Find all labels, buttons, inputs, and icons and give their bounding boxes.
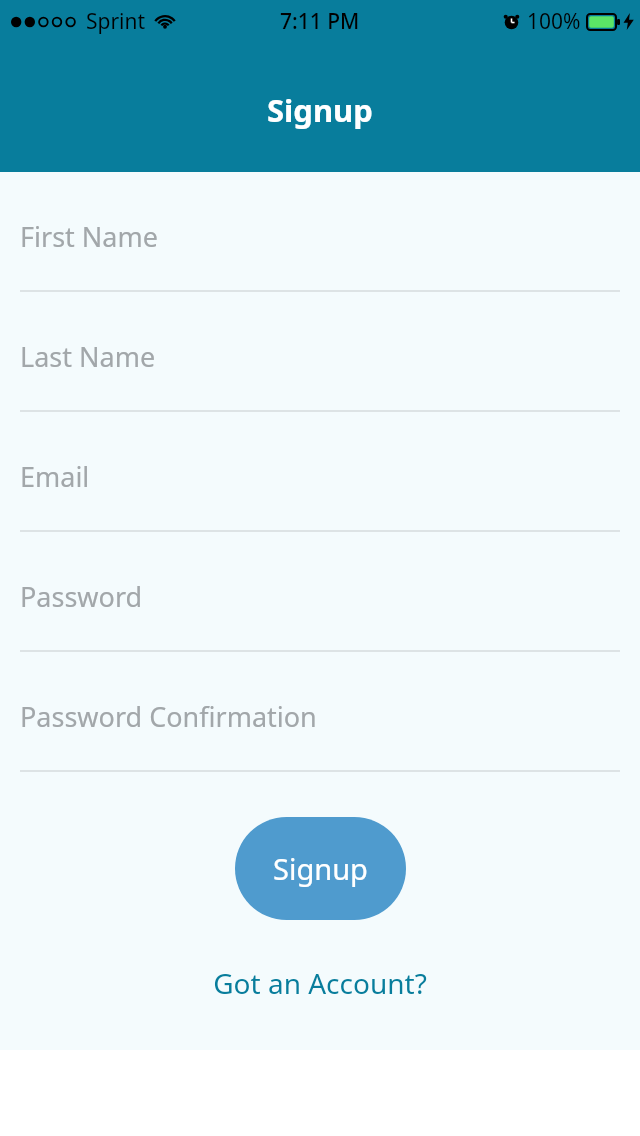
staticText: 7:11 PM: [280, 7, 360, 36]
staticText: Signup: [273, 849, 368, 888]
staticText: Last Name: [20, 338, 156, 375]
staticText: Password Confirmation: [20, 698, 317, 735]
button[interactable]: Got an Account?: [197, 958, 443, 1008]
button[interactable]: Signup: [235, 817, 406, 920]
staticText: Password: [20, 578, 143, 615]
staticText: Sprint: [86, 7, 146, 36]
staticText: Got an Account?: [213, 964, 427, 1002]
button[interactable]: Password: [0, 532, 640, 652]
staticText: Signup: [267, 89, 373, 131]
button[interactable]: Last Name: [0, 292, 640, 412]
button[interactable]: First Name: [0, 172, 640, 292]
staticText: 100%: [527, 7, 581, 36]
button[interactable]: Password Confirmation: [0, 652, 640, 772]
staticText: First Name: [20, 218, 158, 255]
staticText: Email: [20, 458, 90, 495]
button[interactable]: Email: [0, 412, 640, 532]
